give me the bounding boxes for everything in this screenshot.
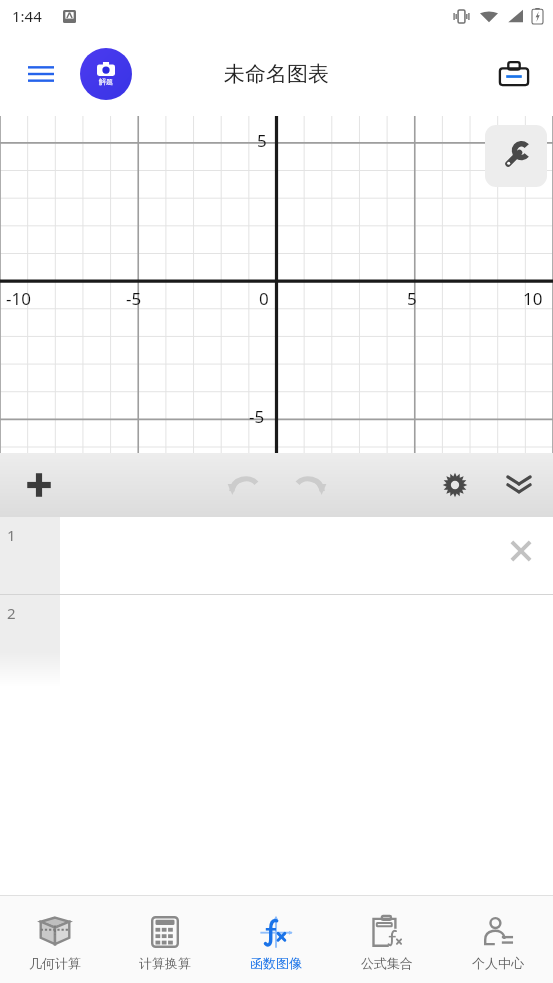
button[interactable]: 几何计算 (0, 908, 110, 971)
staticText: 2 (7, 603, 16, 623)
button[interactable]: 个人中心 (442, 908, 553, 971)
staticText: 个人中心 (472, 955, 524, 971)
staticText: 公式集合 (361, 955, 413, 971)
button[interactable]: Add expression (14, 460, 64, 510)
button[interactable]: 计算换算 (110, 908, 220, 971)
button[interactable]: Redo (289, 462, 335, 508)
button[interactable]: Settings (433, 463, 477, 507)
staticText: 10 (523, 287, 543, 310)
staticText: -5 (126, 287, 142, 310)
staticText: 5 (407, 287, 417, 310)
button[interactable]: 1 (0, 517, 553, 595)
staticText: 函数图像 (250, 955, 302, 971)
staticText: 0 (259, 287, 269, 310)
button[interactable]: 公式集合 (331, 908, 442, 971)
staticText: 5 (257, 129, 267, 152)
button[interactable]: Workspace (491, 51, 537, 97)
staticText: 解题 (99, 77, 113, 86)
button[interactable]: Scan and solve (80, 48, 132, 100)
staticText: 1 (7, 525, 16, 545)
staticText: -5 (249, 405, 265, 428)
button[interactable]: Collapse (497, 463, 541, 507)
staticText: -10 (6, 287, 31, 310)
button[interactable]: Undo (219, 462, 265, 508)
button[interactable]: 函数图像 (220, 908, 331, 971)
button[interactable]: Graph settings (485, 125, 547, 187)
staticText: 计算换算 (139, 955, 191, 971)
button[interactable]: 2 (0, 595, 553, 687)
staticText: 未命名图表 (224, 61, 329, 87)
button[interactable]: Menu (18, 51, 64, 97)
staticText: 几何计算 (29, 955, 81, 971)
button[interactable]: Clear expression (501, 531, 541, 571)
staticText: 1:44 (12, 6, 42, 26)
